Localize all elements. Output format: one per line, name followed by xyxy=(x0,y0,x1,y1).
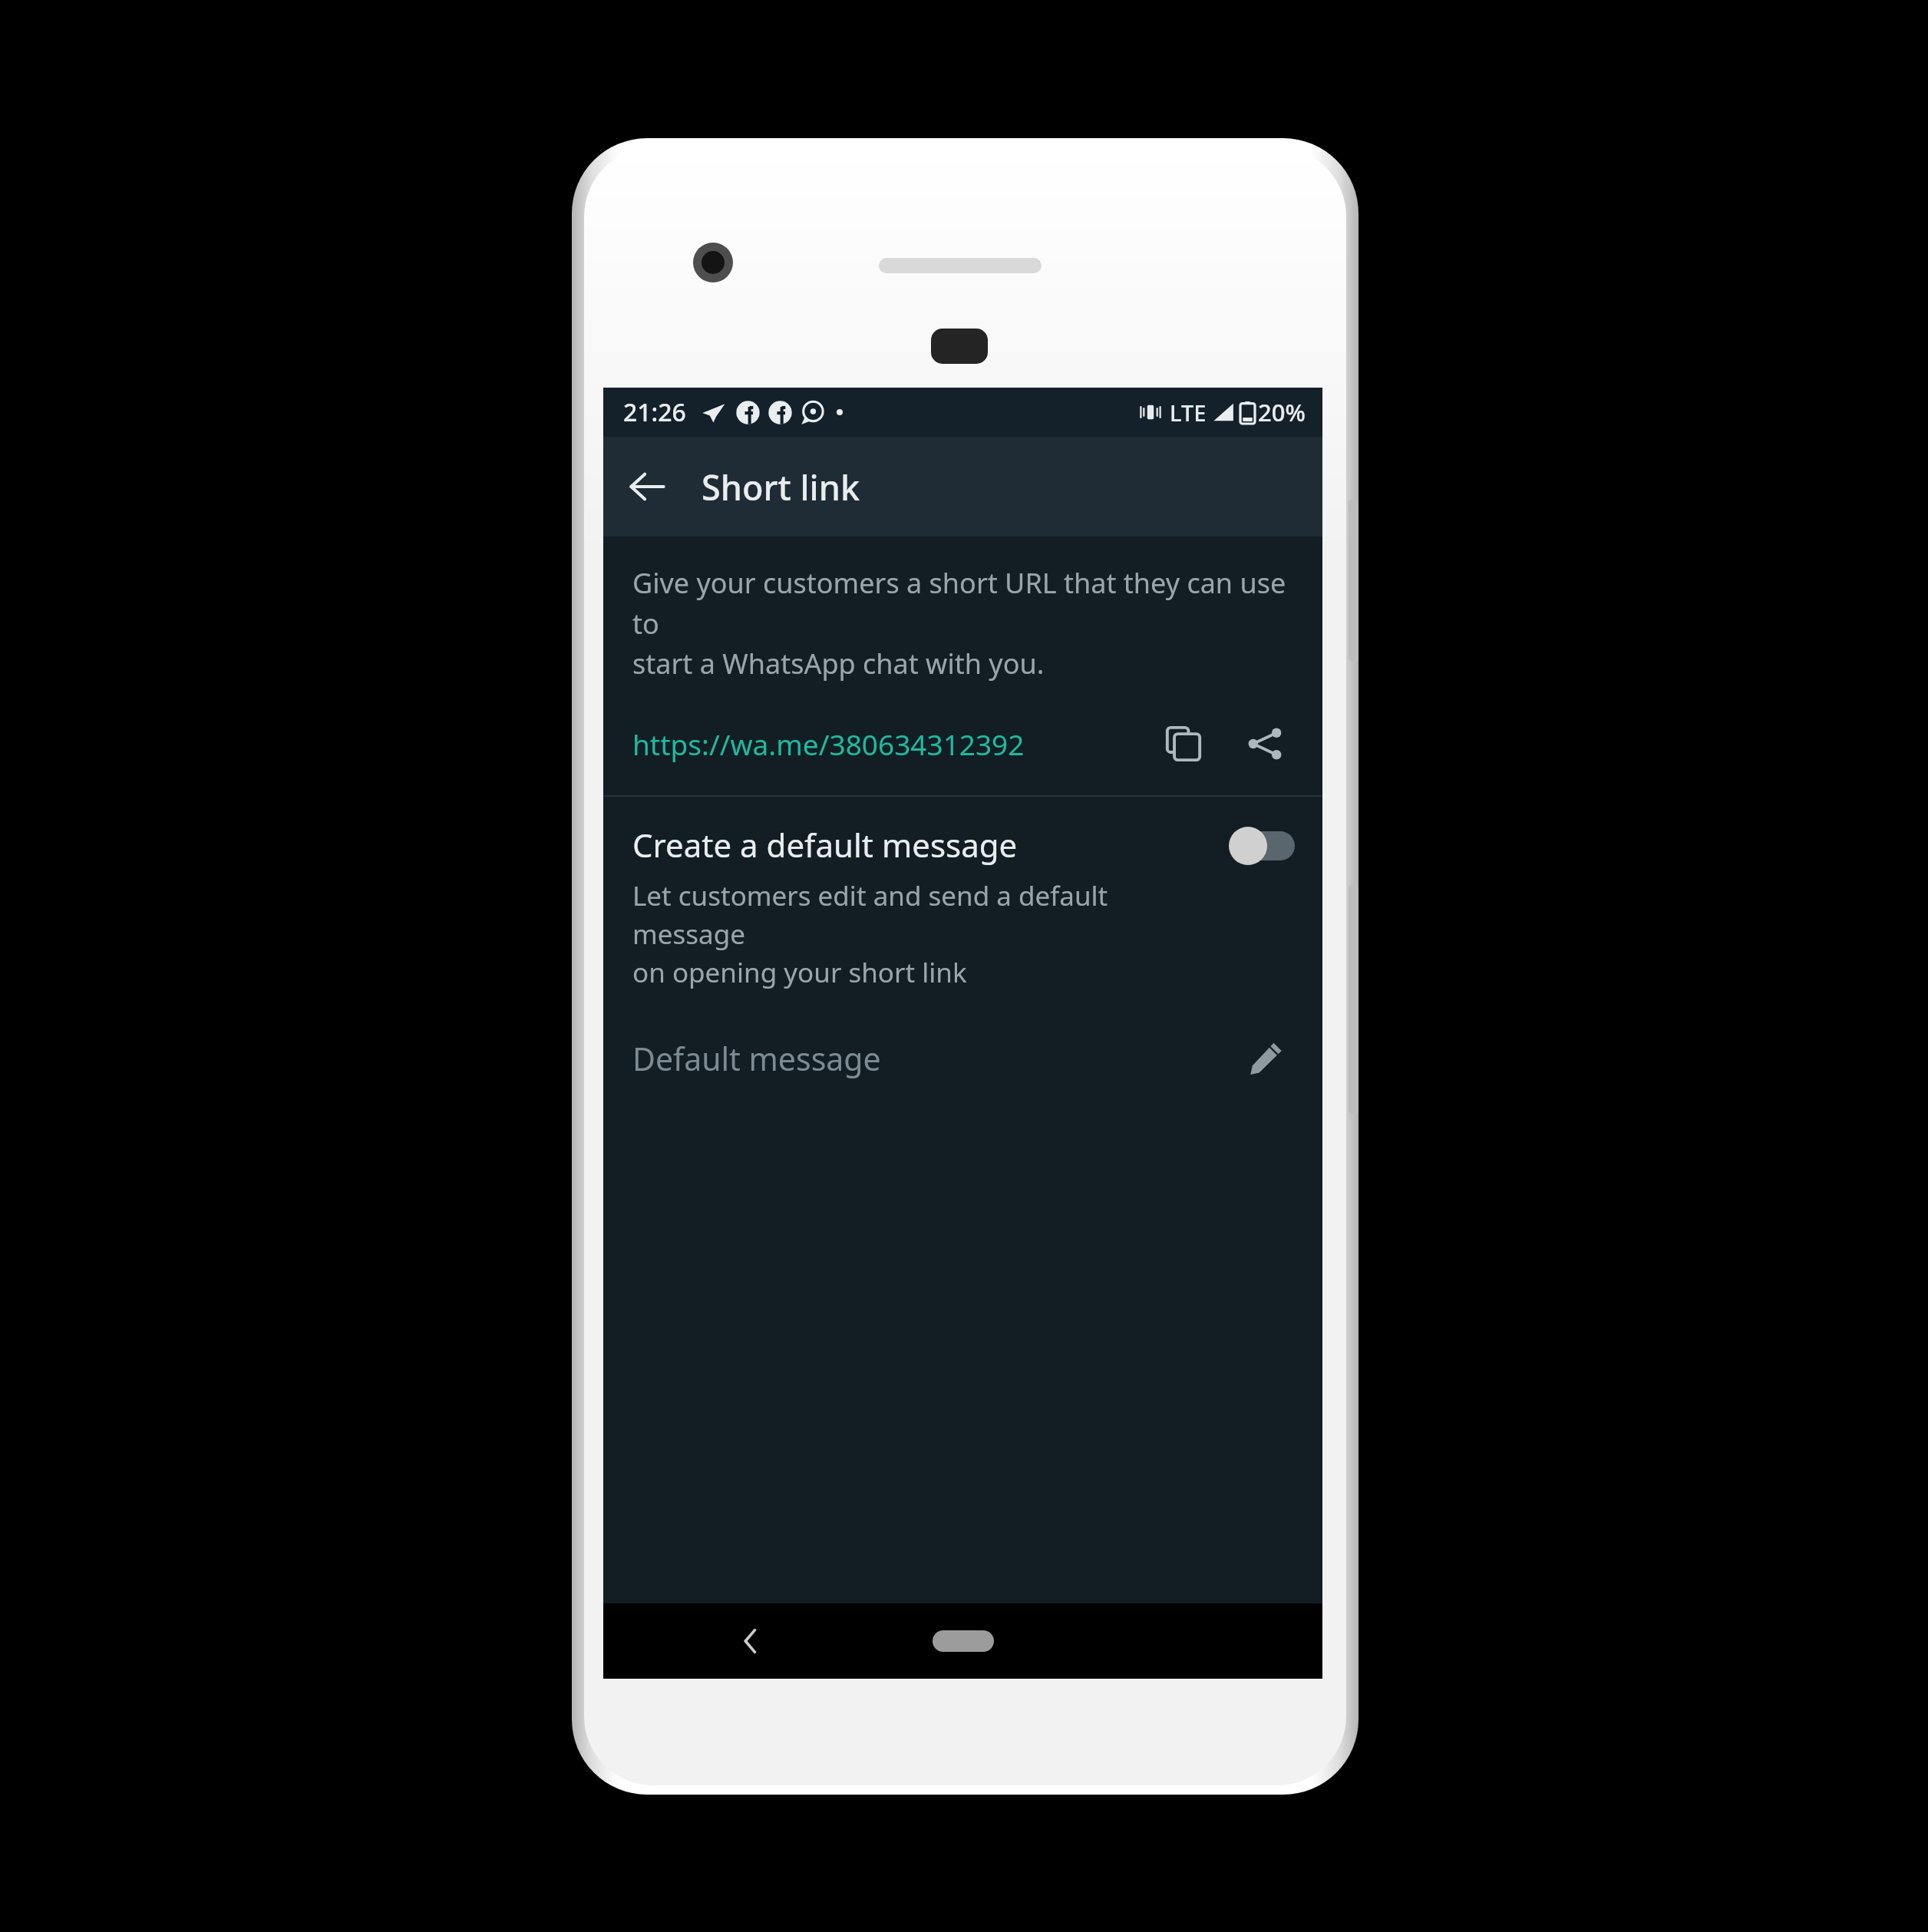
staticText: https://wa.me/380634312392 xyxy=(632,725,1025,763)
staticText: 21:26 xyxy=(623,395,686,429)
staticText: Default message xyxy=(632,1037,881,1080)
staticText: 20% xyxy=(1258,396,1306,428)
button[interactable]: Create a default message xyxy=(603,797,1322,1010)
button[interactable]: Create a default message xyxy=(1229,826,1296,866)
button[interactable]: Copy link xyxy=(1149,709,1218,778)
staticText: Create a default message xyxy=(632,823,1018,867)
staticText: LTE xyxy=(1170,398,1207,428)
button[interactable]: Default message xyxy=(603,1010,1322,1107)
button[interactable]: Back xyxy=(612,452,682,521)
staticText: Give your customers a short URL that the… xyxy=(632,564,1299,682)
staticText: Short link xyxy=(702,464,860,510)
staticText: Let customers edit and send a default me… xyxy=(632,877,1218,990)
button[interactable]: Home xyxy=(933,1630,994,1652)
button[interactable]: Edit default message xyxy=(1233,1026,1298,1091)
button[interactable]: Share link xyxy=(1230,709,1299,778)
button[interactable]: https://wa.me/380634312392 xyxy=(632,725,1149,763)
button[interactable]: Back xyxy=(722,1613,777,1669)
